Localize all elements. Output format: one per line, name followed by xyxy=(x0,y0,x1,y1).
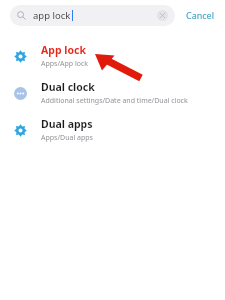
staticText: Apps/Dual apps xyxy=(41,133,93,143)
button[interactable]: App lock xyxy=(0,37,225,74)
staticText: Additional settings/Date and time/Dual c… xyxy=(41,96,188,106)
staticText: app lock xyxy=(33,9,71,22)
staticText: App lock xyxy=(41,43,86,57)
button[interactable]: Clear search xyxy=(157,10,168,21)
staticText: Dual apps xyxy=(41,117,93,131)
staticText: Apps/App lock xyxy=(41,59,89,69)
staticText: Dual clock xyxy=(41,80,95,94)
button[interactable]: Dual apps xyxy=(0,111,225,148)
button[interactable]: app lock xyxy=(10,5,175,26)
button[interactable]: Cancel xyxy=(182,5,219,25)
staticText: Cancel xyxy=(186,9,215,21)
button[interactable]: Dual clock xyxy=(0,74,225,111)
